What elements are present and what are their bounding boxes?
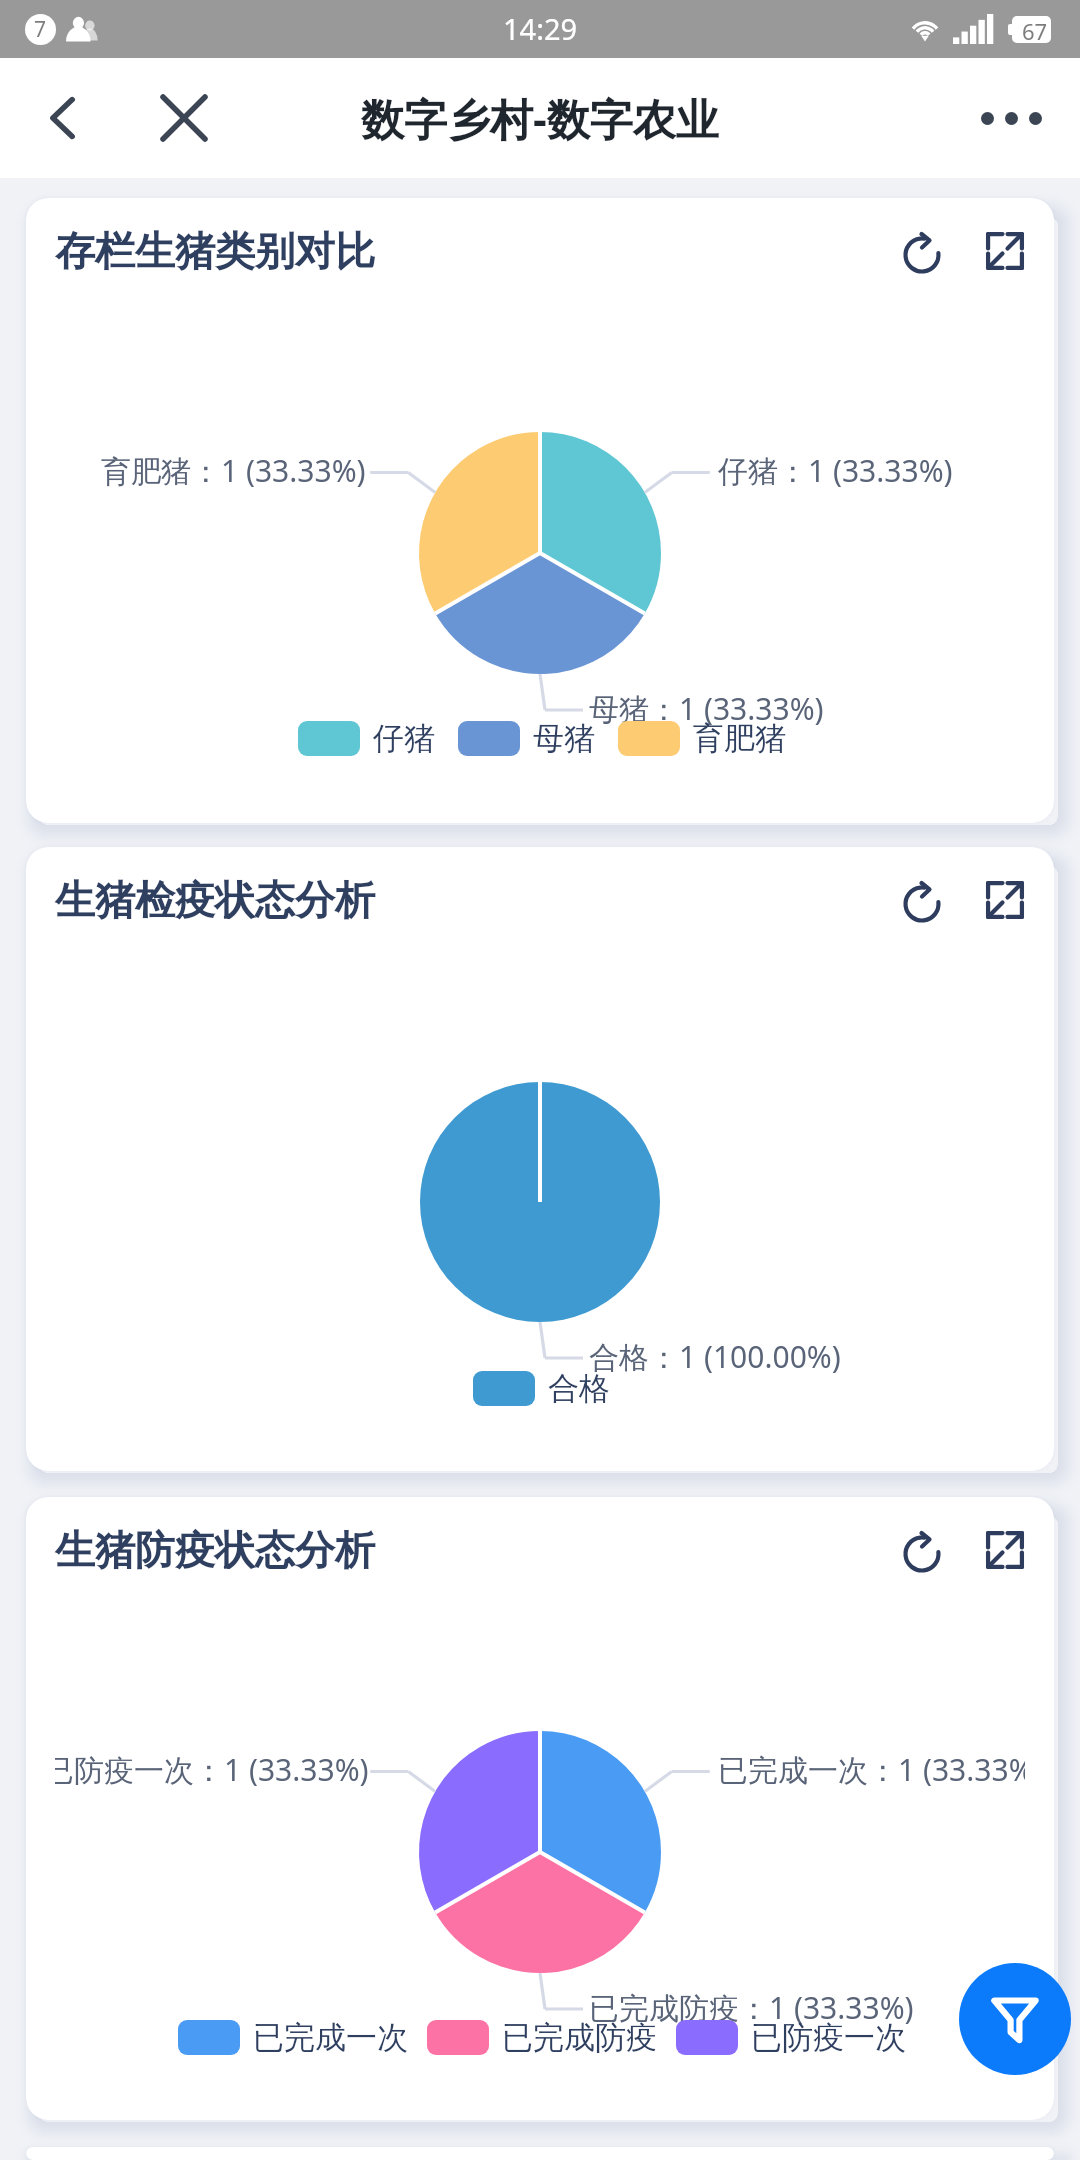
button[interactable]: Filter — [959, 1963, 1071, 2075]
staticText: 数字乡村-数字农业 — [361, 89, 719, 148]
button[interactable]: Fullscreen — [974, 220, 1036, 282]
staticText: 14:29 — [503, 9, 578, 48]
staticText: 生猪检疫状态分析 — [55, 875, 375, 925]
staticText: 存栏生猪类别对比 — [55, 226, 375, 276]
staticText: 育肥猪 — [693, 719, 786, 758]
staticText: 已防疫一次 — [751, 2018, 906, 2057]
staticText: 已完成一次 — [253, 2018, 408, 2057]
button[interactable]: Fullscreen — [974, 1519, 1036, 1581]
staticText: 已完成防疫：1 (33.33%) — [589, 1987, 914, 2028]
staticText: 仔猪：1 (33.33%) — [718, 450, 953, 491]
button[interactable]: 生猪防疫状态分析 — [26, 1497, 1054, 2120]
button[interactable]: 生猪检疫状态分析 — [26, 847, 1054, 1471]
staticText: 育肥猪：1 (33.33%) — [101, 450, 366, 491]
staticText: 已完成防疫 — [502, 2018, 657, 2057]
button[interactable]: Refresh — [892, 869, 954, 931]
button[interactable]: More options — [971, 78, 1051, 158]
staticText: 仔猪 — [373, 719, 435, 758]
button[interactable]: Refresh — [892, 1519, 954, 1581]
staticText: 已防疫一次：1 (33.33%) — [55, 1749, 369, 1790]
staticText: 生猪防疫状态分析 — [55, 1525, 375, 1575]
staticText: 合格：1 (100.00%) — [589, 1336, 841, 1377]
staticText: 母猪：1 (33.33%) — [589, 688, 824, 729]
staticText: 已完成一次：1 (33.33%) — [718, 1749, 1025, 1790]
button[interactable]: Close — [152, 86, 216, 150]
staticText: 67 — [1022, 16, 1048, 43]
staticText: 7 — [34, 15, 47, 44]
button[interactable]: Back — [31, 86, 95, 150]
button[interactable]: 存栏生猪类别对比 — [26, 198, 1054, 823]
staticText: 合格 — [548, 1369, 610, 1408]
button[interactable]: Refresh — [892, 220, 954, 282]
button[interactable]: Fullscreen — [974, 869, 1036, 931]
staticText: 母猪 — [533, 719, 595, 758]
